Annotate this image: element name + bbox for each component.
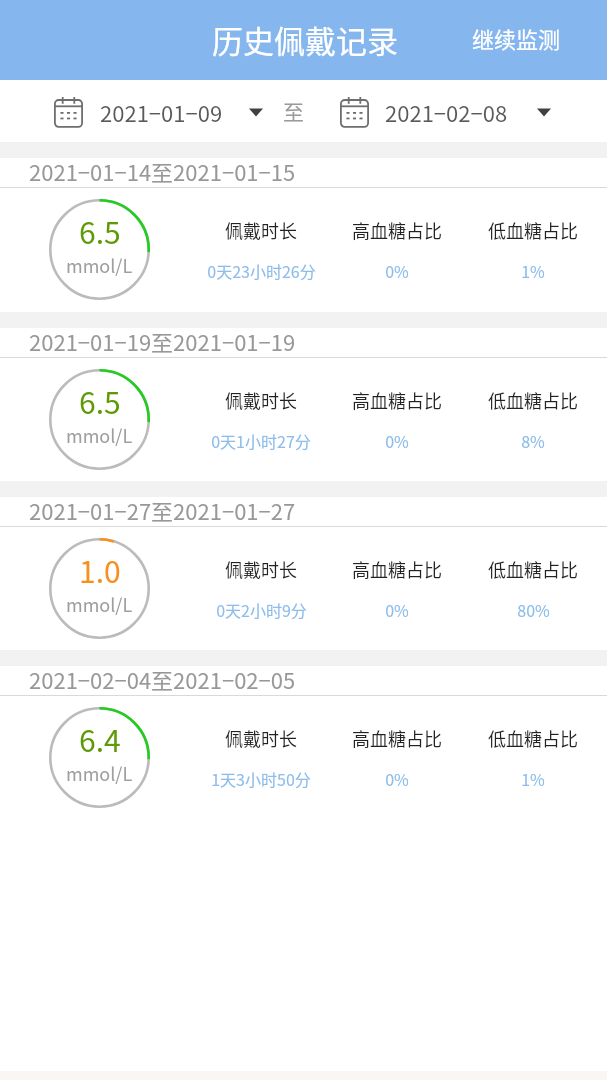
staticText: 历史佩戴记录 bbox=[212, 17, 398, 62]
staticText: 1% bbox=[521, 767, 545, 790]
staticText: 佩戴时长 bbox=[225, 217, 297, 243]
staticText: 高血糖占比 bbox=[352, 725, 442, 751]
staticText: 0% bbox=[385, 259, 409, 282]
staticText: 低血糖占比 bbox=[488, 387, 578, 413]
button[interactable]: 2021−02−08 bbox=[340, 96, 551, 128]
staticText: 2021−02−08 bbox=[385, 96, 508, 128]
button[interactable]: 2021−01−09 bbox=[54, 96, 263, 128]
button[interactable]: 2021−01−14至2021−01−15 bbox=[0, 142, 607, 311]
staticText: 佩戴时长 bbox=[225, 556, 297, 582]
staticText: 8% bbox=[521, 429, 545, 452]
staticText: 2021−01−19至2021−01−19 bbox=[29, 325, 296, 357]
staticText: 继续监测 bbox=[472, 22, 561, 54]
staticText: 1% bbox=[521, 259, 545, 282]
staticText: 1天3小时50分 bbox=[211, 767, 311, 790]
staticText: 1.0 bbox=[79, 548, 121, 591]
staticText: 0% bbox=[385, 429, 409, 452]
staticText: mmol/L bbox=[66, 422, 133, 448]
staticText: 高血糖占比 bbox=[352, 387, 442, 413]
staticText: 低血糖占比 bbox=[488, 556, 578, 582]
staticText: 低血糖占比 bbox=[488, 725, 578, 751]
staticText: 6.5 bbox=[79, 379, 121, 422]
button[interactable]: 2021−02−04至2021−02−05 bbox=[0, 650, 607, 819]
staticText: mmol/L bbox=[66, 760, 133, 786]
staticText: 0% bbox=[385, 598, 409, 621]
staticText: 0% bbox=[385, 767, 409, 790]
staticText: 至 bbox=[283, 96, 304, 126]
staticText: mmol/L bbox=[66, 252, 133, 278]
staticText: 高血糖占比 bbox=[352, 556, 442, 582]
staticText: mmol/L bbox=[66, 591, 133, 617]
button[interactable]: 2021−01−19至2021−01−19 bbox=[0, 312, 607, 481]
staticText: 0天2小时9分 bbox=[216, 598, 307, 621]
staticText: 2021−02−04至2021−02−05 bbox=[29, 663, 296, 695]
button[interactable]: 2021−01−27至2021−01−27 bbox=[0, 481, 607, 650]
staticText: 0天1小时27分 bbox=[211, 429, 311, 452]
button[interactable]: 继续监测 bbox=[460, 14, 573, 62]
staticText: 2021−01−27至2021−01−27 bbox=[29, 494, 296, 526]
staticText: 2021−01−14至2021−01−15 bbox=[29, 155, 296, 187]
staticText: 2021−01−09 bbox=[100, 96, 223, 128]
staticText: 6.5 bbox=[79, 209, 121, 252]
staticText: 高血糖占比 bbox=[352, 217, 442, 243]
staticText: 佩戴时长 bbox=[225, 725, 297, 751]
staticText: 80% bbox=[517, 598, 550, 621]
staticText: 6.4 bbox=[79, 717, 121, 760]
staticText: 低血糖占比 bbox=[488, 217, 578, 243]
staticText: 0天23小时26分 bbox=[207, 259, 316, 282]
staticText: 佩戴时长 bbox=[225, 387, 297, 413]
